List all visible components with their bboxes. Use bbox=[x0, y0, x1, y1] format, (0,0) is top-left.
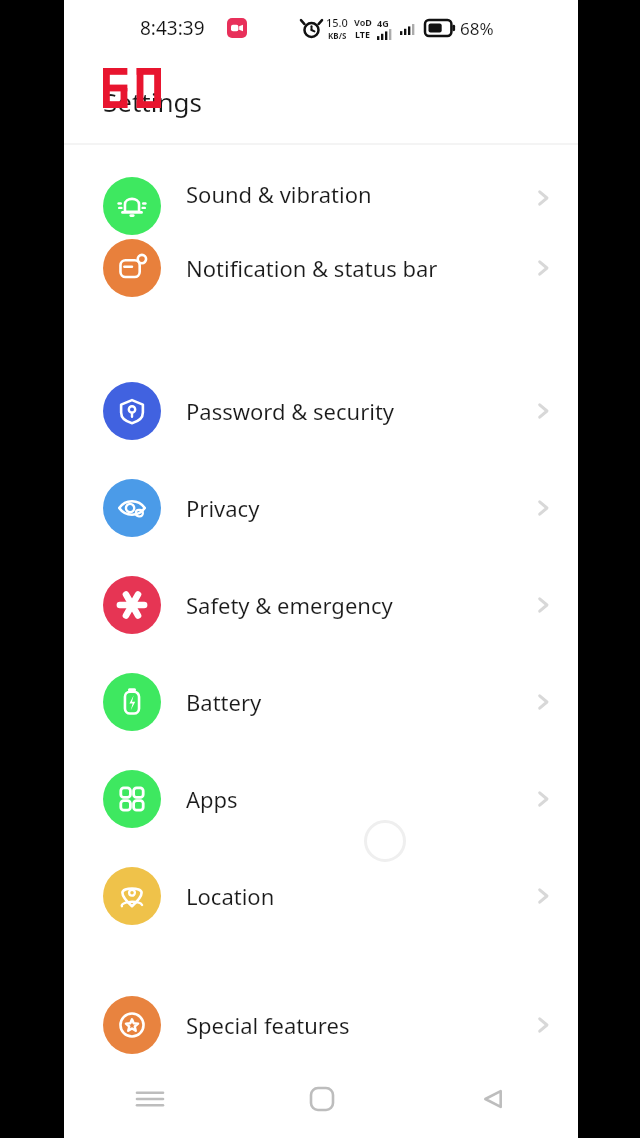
staticText: LTE bbox=[355, 28, 371, 40]
staticText: Settings bbox=[103, 84, 202, 119]
staticText: 15.0 bbox=[326, 15, 348, 30]
staticText: 8:43:39 bbox=[140, 15, 205, 41]
button[interactable]: Special features bbox=[64, 990, 578, 1060]
staticText: KB/S bbox=[328, 30, 347, 41]
button[interactable]: Back bbox=[407, 1060, 578, 1138]
button[interactable]: Location bbox=[64, 847, 578, 944]
staticText: 4G bbox=[377, 17, 389, 29]
staticText: Privacy bbox=[186, 493, 532, 523]
staticText: VoD bbox=[354, 16, 372, 28]
staticText: Battery bbox=[186, 687, 532, 717]
staticText: Notification & status bar bbox=[186, 253, 532, 283]
staticText: 68% bbox=[460, 17, 494, 40]
staticText: Special features bbox=[186, 1010, 532, 1040]
button[interactable]: Battery bbox=[64, 653, 578, 750]
staticText: Sound & vibration bbox=[186, 179, 532, 209]
button[interactable]: Sound & vibration bbox=[64, 145, 578, 219]
staticText: Safety & emergency bbox=[186, 590, 532, 620]
staticText: Location bbox=[186, 881, 532, 911]
button[interactable]: Recent apps bbox=[64, 1060, 236, 1138]
button[interactable]: Safety & emergency bbox=[64, 556, 578, 653]
button[interactable]: Privacy bbox=[64, 459, 578, 556]
button[interactable]: Apps bbox=[64, 750, 578, 847]
staticText: Password & security bbox=[186, 396, 532, 426]
staticText: Apps bbox=[186, 784, 532, 814]
button[interactable]: Password & security bbox=[64, 362, 578, 459]
button[interactable]: Home bbox=[236, 1060, 407, 1138]
button[interactable]: Notification & status bar bbox=[64, 219, 578, 316]
